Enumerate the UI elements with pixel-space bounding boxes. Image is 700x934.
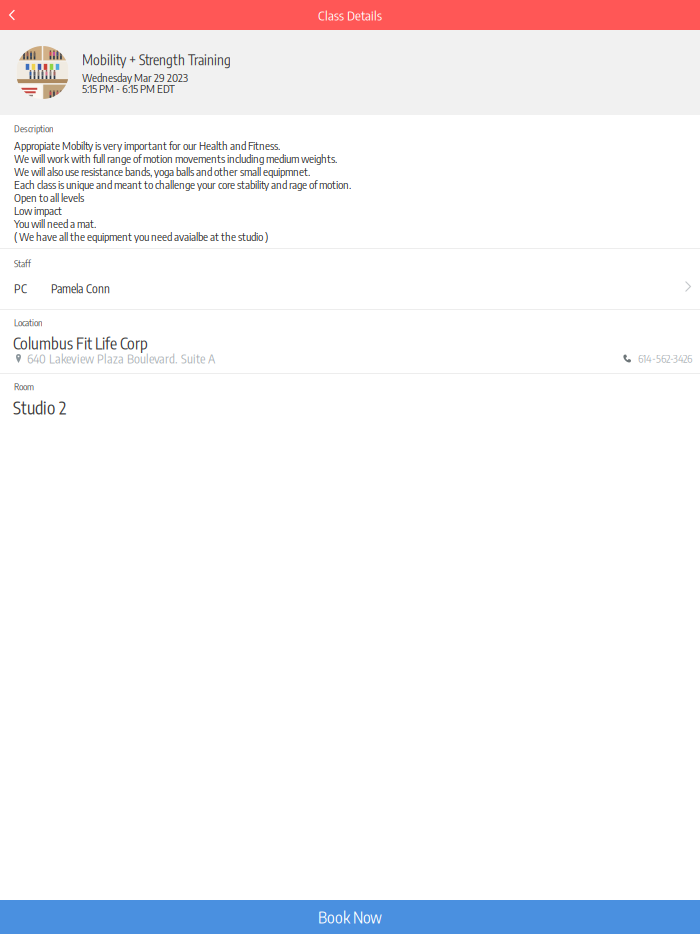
staticText: Columbus Fit Life Corp <box>13 333 148 353</box>
staticText: 640 Lakeview Plaza Boulevard. Suite A <box>27 351 215 366</box>
staticText: Location <box>14 317 43 328</box>
staticText: Appropiate Mobilty is very important for… <box>14 138 280 153</box>
button[interactable]: Book Now <box>0 900 700 934</box>
button[interactable]: Staff <box>0 249 700 309</box>
staticText: Book Now <box>318 907 382 927</box>
staticText: We will also use resistance bands, yoga … <box>14 164 310 179</box>
staticText: Mobility + Strength Training <box>82 51 231 68</box>
staticText: Room <box>14 381 34 392</box>
staticText: Pamela Conn <box>51 281 110 296</box>
staticText: 614-562-3426 <box>638 352 692 365</box>
staticText: Wednesday Mar 29 2023 <box>82 70 188 85</box>
staticText: We will work with full range of motion m… <box>14 151 337 166</box>
staticText: You will need a mat. <box>14 216 96 231</box>
staticText: Class Details <box>318 7 382 23</box>
staticText: Each class is unique and meant to challe… <box>14 177 351 192</box>
staticText: 5:15 PM - 6:15 PM EDT <box>82 81 175 96</box>
staticText: ( We have all the equipment you need ava… <box>14 229 268 244</box>
staticText: Low impact <box>14 203 62 218</box>
button[interactable]: Back <box>0 0 24 30</box>
staticText: Description <box>14 123 54 134</box>
staticText: Staff <box>14 258 31 269</box>
staticText: PC <box>14 281 27 296</box>
button[interactable]: 614-562-3426 <box>623 352 692 364</box>
staticText: Open to all levels <box>14 190 84 205</box>
staticText: Studio 2 <box>13 397 66 418</box>
